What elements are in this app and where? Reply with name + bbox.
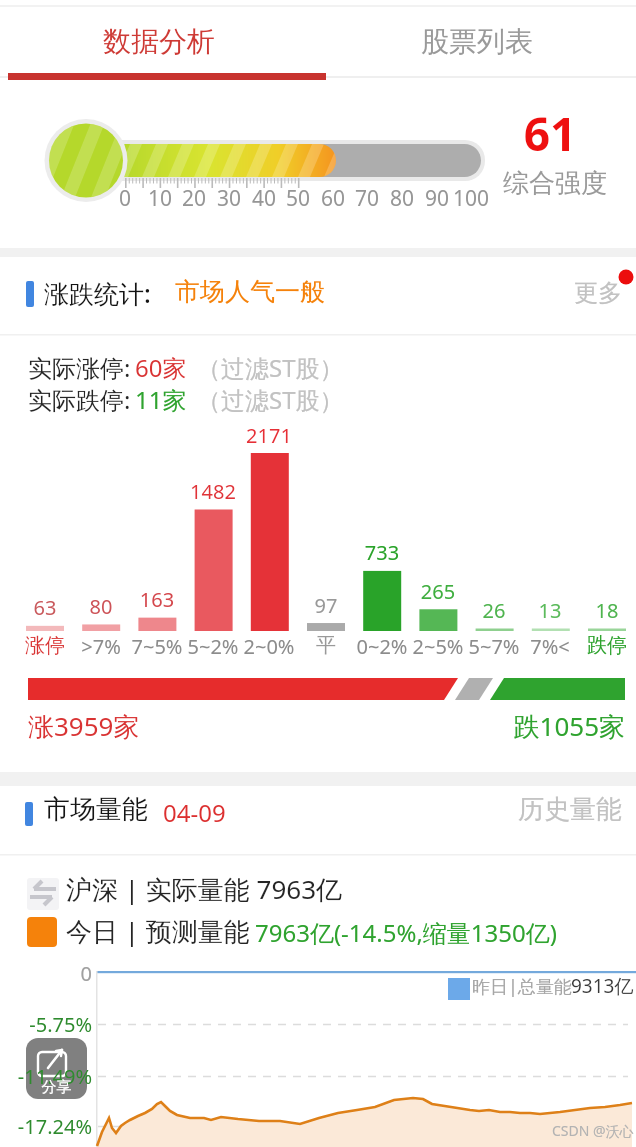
staticText: 市场人气一般: [175, 276, 325, 307]
staticText: 60家: [135, 351, 187, 384]
staticText: 100: [441, 184, 501, 213]
staticText: 163: [117, 586, 197, 613]
staticText: 733: [342, 539, 422, 566]
staticText: 18: [567, 597, 636, 624]
staticText: 60: [303, 184, 363, 213]
staticText: -5.75%: [0, 1011, 92, 1038]
staticText: 综合强度: [503, 167, 607, 200]
staticText: 跌1055家: [305, 708, 625, 744]
staticText: 70: [337, 184, 397, 213]
staticText: 40: [234, 184, 294, 213]
staticText: 沪深 | 实际量能 7963亿: [66, 871, 343, 907]
staticText: 0: [95, 184, 155, 213]
staticText: 分享: [26, 1078, 87, 1097]
staticText: 04-09: [163, 796, 226, 829]
staticText: 20: [164, 184, 224, 213]
staticText: 10: [130, 184, 190, 213]
staticText: 跌停: [567, 633, 636, 658]
staticText: -17.24%: [0, 1113, 92, 1140]
staticText: 涨停: [5, 633, 85, 658]
staticText: 涨跌统计:: [44, 276, 151, 310]
staticText: 5~2%: [173, 633, 253, 660]
staticText: 今日 | 预测量能: [66, 913, 250, 949]
staticText: 实际涨停:: [28, 351, 131, 384]
button[interactable]: 历史量能: [486, 786, 636, 836]
staticText: 9313亿: [571, 973, 634, 999]
staticText: 26: [454, 597, 534, 624]
staticText: 更多: [574, 278, 622, 308]
staticText: CSDN @沃心: [552, 1121, 634, 1140]
button[interactable]: 更多: [555, 262, 636, 317]
staticText: 0: [40, 960, 92, 987]
staticText: 涨3959家: [28, 708, 140, 744]
staticText: -11.49%: [0, 1063, 92, 1090]
button[interactable]: 分享: [26, 1038, 87, 1099]
staticText: （过滤ST股）: [197, 351, 344, 384]
staticText: 90: [407, 184, 467, 213]
staticText: 97: [286, 592, 366, 619]
staticText: 1482: [173, 478, 253, 505]
staticText: 平: [286, 633, 366, 658]
staticText: 5~7%: [454, 633, 534, 660]
staticText: 昨日|总量能: [472, 974, 572, 999]
staticText: 63: [5, 594, 85, 621]
staticText: 265: [398, 578, 478, 605]
staticText: 50: [268, 184, 328, 213]
staticText: 0~2%: [342, 633, 422, 660]
staticText: 7963亿(-14.5%,缩量1350亿): [255, 916, 557, 949]
button[interactable]: 数据分析: [0, 6, 318, 76]
staticText: 2~5%: [398, 633, 478, 660]
staticText: 市场量能: [44, 793, 148, 826]
staticText: 历史量能: [486, 793, 622, 826]
staticText: 11家: [135, 383, 187, 416]
staticText: 股票列表: [421, 24, 533, 59]
staticText: 13: [510, 597, 590, 624]
staticText: 7%<: [510, 633, 590, 660]
staticText: （过滤ST股）: [197, 383, 344, 416]
staticText: 2~0%: [229, 633, 309, 660]
staticText: 61: [490, 102, 610, 165]
staticText: >7%: [61, 633, 141, 660]
staticText: 80: [372, 184, 432, 213]
staticText: 7~5%: [117, 633, 197, 660]
staticText: 80: [61, 593, 141, 620]
staticText: 2171: [229, 422, 309, 449]
staticText: 30: [199, 184, 259, 213]
button[interactable]: 股票列表: [318, 6, 636, 76]
staticText: 数据分析: [103, 24, 215, 59]
staticText: 实际跌停:: [28, 383, 131, 416]
